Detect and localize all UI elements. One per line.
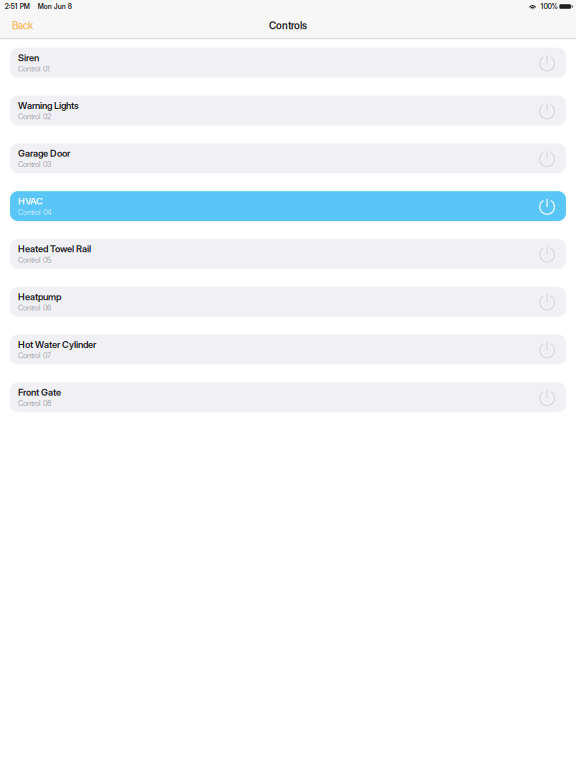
staticText: Garage Door <box>18 148 70 159</box>
button[interactable]: HVAC <box>10 191 566 221</box>
staticText: Control 05 <box>18 256 51 264</box>
staticText: Control 07 <box>18 351 51 360</box>
staticText: Front Gate <box>18 387 61 398</box>
button[interactable]: Heated Towel Rail <box>10 239 566 269</box>
staticText: Control 03 <box>18 160 51 169</box>
staticText: Siren <box>18 52 39 63</box>
staticText: Heated Towel Rail <box>18 243 91 255</box>
staticText: Back <box>12 19 33 32</box>
staticText: Mon Jun 8 <box>30 2 72 11</box>
staticText: 2:51 PM <box>5 2 30 11</box>
staticText: Controls <box>269 19 307 32</box>
staticText: Control 02 <box>18 112 51 121</box>
button[interactable]: Heatpump <box>10 287 566 317</box>
button[interactable]: Warning Lights <box>10 95 566 125</box>
staticText: Control 08 <box>18 399 51 408</box>
staticText: Hot Water Cylinder <box>18 339 96 350</box>
button[interactable]: Back <box>0 12 43 38</box>
button[interactable]: Garage Door <box>10 143 566 173</box>
staticText: Warning Lights <box>18 100 79 111</box>
staticText: 100% <box>536 2 559 11</box>
staticText: Control 04 <box>18 208 52 217</box>
staticText: HVAC <box>18 195 43 207</box>
button[interactable]: Siren <box>10 48 566 78</box>
button[interactable]: Front Gate <box>10 382 566 412</box>
staticText: Control 01 <box>18 64 50 73</box>
staticText: Control 06 <box>18 303 51 312</box>
button[interactable]: Hot Water Cylinder <box>10 334 566 364</box>
staticText: Heatpump <box>18 291 61 302</box>
